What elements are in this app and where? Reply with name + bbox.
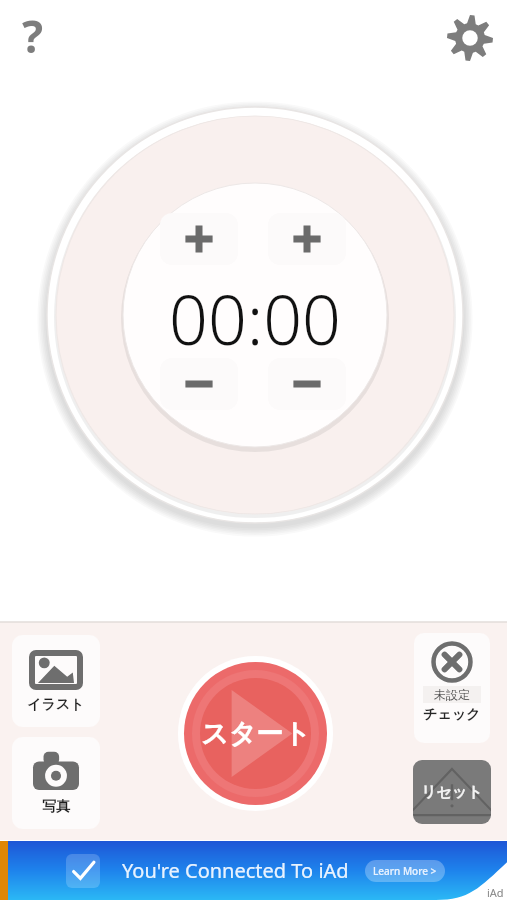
button[interactable]: Settings: [440, 8, 500, 68]
staticText: 写真: [42, 798, 70, 816]
staticText: 00:00: [169, 272, 341, 358]
button[interactable]: Help: [4, 6, 60, 62]
staticText: スタート: [201, 717, 311, 751]
button[interactable]: Photo: [12, 737, 100, 829]
button[interactable]: Decrease seconds: [268, 358, 346, 410]
button[interactable]: Timer dial: [40, 100, 470, 530]
staticText: You're Connected To iAd: [122, 857, 349, 884]
staticText: Learn More >: [373, 864, 437, 878]
staticText: イラスト: [27, 696, 85, 714]
staticText: ?: [22, 6, 43, 62]
button[interactable]: リセット: [413, 760, 491, 824]
button[interactable]: Learn More >: [365, 860, 445, 882]
staticText: iAd: [487, 885, 504, 900]
button[interactable]: Start timer: [178, 656, 333, 811]
button[interactable]: Illustration: [12, 635, 100, 727]
button[interactable]: Decrease minutes: [160, 358, 238, 410]
button[interactable]: Increase seconds: [268, 213, 346, 265]
button[interactable]: Increase minutes: [160, 213, 238, 265]
button[interactable]: Advertisement: [8, 841, 507, 900]
staticText: 未設定: [434, 687, 470, 702]
button[interactable]: 未設定: [414, 633, 490, 743]
staticText: リセット: [421, 783, 483, 802]
staticText: チェック: [423, 706, 481, 724]
